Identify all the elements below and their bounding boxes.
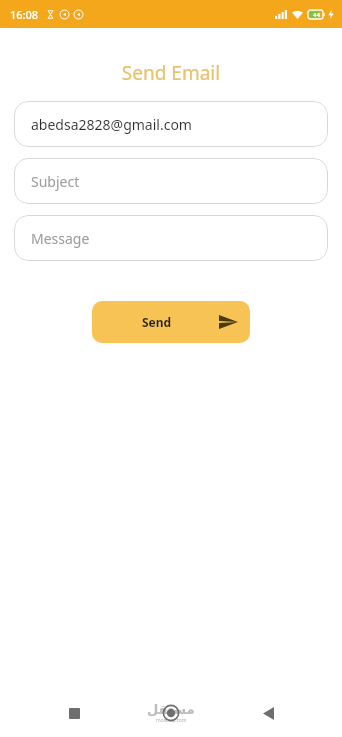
staticText: Send	[142, 314, 172, 330]
button[interactable]: Send	[92, 301, 250, 343]
staticText: Subject	[31, 172, 80, 191]
button[interactable]: Subject	[14, 158, 328, 204]
staticText: Send Email	[0, 60, 342, 86]
button[interactable]: abedsa2828@gmail.com	[14, 101, 328, 147]
staticText: abedsa2828@gmail.com	[31, 115, 192, 134]
staticText: Message	[31, 229, 90, 248]
staticText: mostaql.com	[156, 717, 187, 724]
staticText: 44	[313, 11, 320, 19]
button[interactable]: Message	[14, 215, 328, 261]
button[interactable]: Recent apps	[51, 690, 97, 736]
button[interactable]: Home	[148, 690, 194, 736]
button[interactable]: Back	[245, 690, 291, 736]
staticText: 16:08	[10, 7, 39, 22]
staticText: مستقل	[147, 702, 195, 717]
